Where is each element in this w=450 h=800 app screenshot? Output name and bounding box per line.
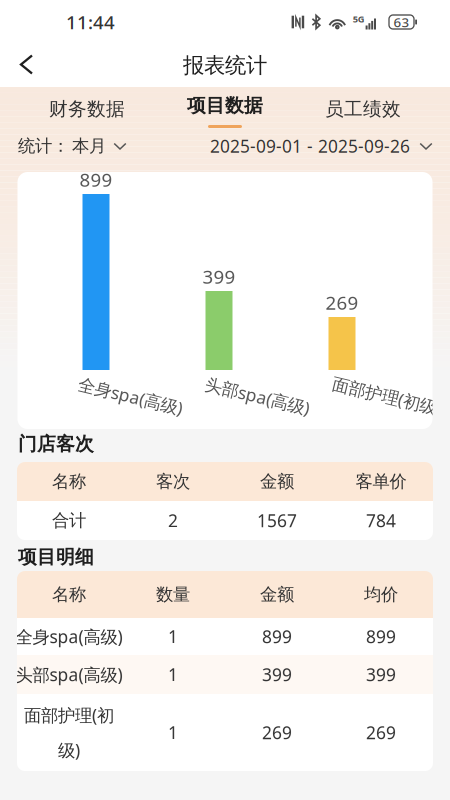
- staticText: 399: [262, 663, 292, 686]
- staticText: 899: [79, 167, 112, 192]
- staticText: 63: [393, 13, 409, 31]
- staticText: 1: [168, 721, 178, 744]
- staticText: 头部spa(高级): [15, 663, 122, 686]
- staticText: 899: [366, 625, 396, 648]
- staticText: 面部护理(初级): [331, 384, 443, 407]
- staticText: 1567: [257, 509, 297, 532]
- button[interactable]: 财务数据: [18, 87, 156, 131]
- staticText: 合计: [52, 510, 86, 531]
- button[interactable]: Back: [9, 47, 45, 83]
- staticText: 2: [168, 509, 178, 532]
- staticText: 11:44: [66, 10, 115, 34]
- staticText: 全身spa(高级): [15, 625, 122, 648]
- staticText: 金额: [260, 584, 294, 605]
- staticText: 财务数据: [49, 97, 125, 120]
- staticText: 全身spa(高级): [77, 384, 184, 407]
- staticText: 899: [262, 625, 292, 648]
- staticText: 数量: [156, 584, 190, 605]
- staticText: 269: [366, 721, 396, 744]
- staticText: 名称: [52, 584, 86, 605]
- staticText: 客单价: [355, 471, 406, 492]
- staticText: 统计：: [18, 135, 69, 157]
- staticText: 级): [58, 738, 80, 761]
- staticText: 2025-09-01 - 2025-09-26: [210, 134, 410, 157]
- staticText: 头部spa(高级): [204, 384, 311, 407]
- staticText: 784: [366, 509, 396, 532]
- staticText: 客次: [156, 471, 190, 492]
- staticText: 5G: [353, 13, 365, 25]
- staticText: 门店客次: [18, 432, 94, 455]
- staticText: 本月: [72, 135, 106, 157]
- staticText: 均价: [364, 584, 398, 605]
- button[interactable]: 项目数据: [156, 87, 294, 131]
- button[interactable]: 统计：: [18, 135, 127, 157]
- staticText: 报表统计: [183, 52, 267, 79]
- button[interactable]: 员工绩效: [294, 87, 432, 131]
- staticText: 269: [262, 721, 292, 744]
- staticText: 269: [325, 290, 358, 315]
- staticText: 项目明细: [18, 545, 94, 568]
- staticText: 1: [168, 625, 178, 648]
- staticText: 项目数据: [187, 94, 263, 117]
- staticText: 399: [366, 663, 396, 686]
- staticText: 399: [202, 264, 235, 289]
- staticText: 名称: [52, 471, 86, 492]
- button[interactable]: 2025-09-01 - 2025-09-26: [210, 134, 433, 157]
- staticText: 面部护理(初: [24, 703, 114, 726]
- staticText: 金额: [260, 471, 294, 492]
- staticText: 1: [168, 663, 178, 686]
- staticText: 员工绩效: [325, 97, 401, 120]
